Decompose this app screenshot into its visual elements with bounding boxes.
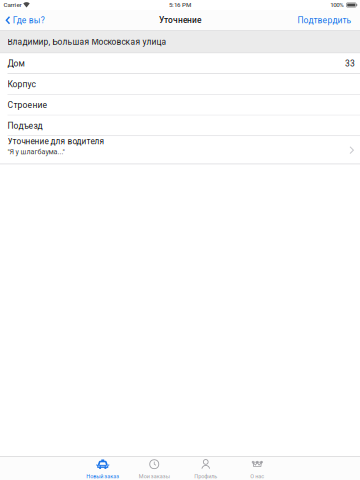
button[interactable]: Дом [0,53,360,74]
staticText: 100% [330,1,344,9]
button[interactable]: Корпус [0,74,360,95]
button[interactable]: Подтвердить [294,10,360,30]
button[interactable]: О нас [231,456,283,480]
button[interactable]: Строение [0,95,360,115]
staticText: Новый заказ [86,473,119,479]
staticText: Владимир, Большая Московская улица [7,37,166,47]
staticText: Строение [7,100,47,110]
staticText: Мои заказы [139,473,170,479]
staticText: Профиль [194,473,217,479]
button[interactable]: Подъезд [0,115,360,136]
button[interactable]: Новый заказ [77,456,128,480]
staticText: Уточнение [159,15,201,25]
staticText: Дом [7,59,24,69]
staticText: Уточнение для водителя [7,137,104,146]
staticText: О нас [250,473,264,479]
button[interactable]: Мои заказы [128,456,180,480]
staticText: "Я у шлагбаума..." [7,148,64,156]
button[interactable]: Где вы? [0,10,49,30]
staticText: 33 [345,59,355,69]
button[interactable]: Уточнение для водителя [0,136,360,164]
staticText: Где вы? [13,15,45,25]
staticText: Корпус [7,79,35,89]
staticText: 5:16 PM [169,1,191,9]
staticText: Подтвердить [298,15,352,25]
button[interactable]: Профиль [180,456,231,480]
staticText: Подъезд [7,121,42,131]
staticText: Carrier [3,1,21,9]
